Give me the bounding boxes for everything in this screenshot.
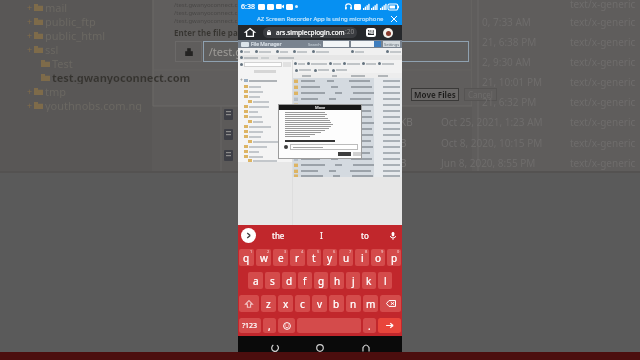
- staticText: u: [343, 251, 350, 265]
- staticText: Oct 25, 2021, 1:23 AM: [441, 115, 543, 129]
- button[interactable]: c: [295, 295, 310, 312]
- staticText: Search: [308, 42, 321, 47]
- button[interactable]: s: [265, 272, 280, 289]
- button[interactable]: [292, 102, 402, 108]
- staticText: text/x-generic: [570, 35, 636, 49]
- button[interactable]: [292, 84, 402, 90]
- button[interactable]: x: [278, 295, 293, 312]
- staticText: ars.simplecplogin.com: [276, 28, 345, 37]
- staticText: f: [303, 274, 307, 288]
- staticText: 2: [267, 249, 270, 254]
- button[interactable]: [292, 144, 402, 150]
- button[interactable]: Backspace: [380, 295, 401, 312]
- button[interactable]: [292, 90, 402, 96]
- button[interactable]: k: [362, 272, 376, 289]
- button[interactable]: [292, 168, 402, 174]
- staticText: +: [27, 29, 33, 41]
- button[interactable]: z: [261, 295, 276, 312]
- button[interactable]: g: [314, 272, 328, 289]
- staticText: +: [27, 43, 33, 55]
- button[interactable]: [292, 174, 402, 177]
- button[interactable]: to: [361, 230, 369, 241]
- button[interactable]: Enter: [378, 318, 401, 333]
- button[interactable]: q: [239, 249, 254, 266]
- button[interactable]: l: [378, 272, 392, 289]
- button[interactable]: Open tabs: [363, 25, 379, 40]
- staticText: :2083: [345, 27, 357, 38]
- button[interactable]: [292, 114, 402, 120]
- staticText: w: [260, 251, 268, 265]
- button[interactable]: Shift: [239, 295, 259, 312]
- button[interactable]: j: [346, 272, 360, 289]
- button[interactable]: a: [248, 272, 263, 289]
- button[interactable]: Settings: [383, 41, 400, 47]
- button[interactable]: Move Files: [414, 89, 456, 100]
- staticText: B: [400, 156, 407, 170]
- button[interactable]: ?123: [239, 318, 261, 333]
- button[interactable]: Home: [311, 339, 329, 357]
- button[interactable]: m: [363, 295, 378, 312]
- staticText: Move: [315, 105, 326, 110]
- button[interactable]: v: [312, 295, 327, 312]
- button[interactable]: Cancel: [468, 89, 493, 100]
- button[interactable]: ,: [263, 318, 276, 333]
- button[interactable]: [292, 132, 402, 138]
- button[interactable]: .: [363, 318, 376, 333]
- button[interactable]: i: [355, 249, 369, 266]
- staticText: File Manager: [251, 41, 282, 48]
- button[interactable]: p: [387, 249, 401, 266]
- button[interactable]: r: [290, 249, 305, 266]
- button[interactable]: Recent apps: [357, 339, 375, 357]
- button[interactable]: the: [272, 230, 285, 241]
- staticText: 7: [349, 249, 352, 254]
- button[interactable]: [292, 150, 402, 156]
- button[interactable]: y: [323, 249, 337, 266]
- button[interactable]: u: [339, 249, 353, 266]
- button[interactable]: Home directory: [175, 41, 202, 62]
- button[interactable]: d: [282, 272, 296, 289]
- button[interactable]: [292, 108, 402, 114]
- staticText: text/x-generic: [570, 136, 636, 150]
- button[interactable]: Back: [266, 339, 284, 357]
- button[interactable]: [292, 78, 402, 84]
- button[interactable]: w: [256, 249, 271, 266]
- button[interactable]: f: [298, 272, 312, 289]
- staticText: +: [240, 77, 243, 84]
- button[interactable]: I: [320, 230, 323, 241]
- button[interactable]: Search: [241, 228, 256, 243]
- staticText: +: [27, 15, 33, 27]
- staticText: 21, 6:38 PM: [482, 35, 537, 49]
- button[interactable]: Profile: [383, 28, 393, 38]
- button[interactable]: Emoji: [278, 318, 295, 333]
- button[interactable]: Home: [242, 25, 258, 40]
- button[interactable]: [292, 138, 402, 144]
- button[interactable]: Voice input: [386, 229, 399, 242]
- button[interactable]: b: [329, 295, 344, 312]
- button[interactable]: [292, 120, 402, 126]
- staticText: d: [286, 274, 293, 288]
- staticText: KB: [400, 115, 413, 129]
- staticText: text/x-generic: [570, 95, 636, 109]
- staticText: m: [366, 297, 376, 311]
- button[interactable]: t: [307, 249, 321, 266]
- staticText: c: [300, 297, 305, 311]
- button[interactable]: [292, 96, 402, 102]
- button[interactable]: e: [273, 249, 288, 266]
- button[interactable]: n: [346, 295, 361, 312]
- staticText: +: [27, 85, 33, 97]
- button[interactable]: [292, 126, 402, 132]
- button[interactable]: [292, 162, 402, 168]
- button[interactable]: ars.simplecplogin.com: [263, 27, 357, 38]
- button[interactable]: o: [371, 249, 385, 266]
- staticText: text/x-generic: [570, 55, 636, 69]
- staticText: public_ftp: [45, 14, 96, 28]
- staticText: Oct 8, 2020, 10:15 PM: [441, 136, 543, 150]
- staticText: e: [278, 251, 284, 265]
- button[interactable]: [292, 156, 402, 162]
- button[interactable]: Dismiss notification: [389, 14, 399, 24]
- staticText: tmp: [45, 84, 67, 98]
- staticText: .: [368, 319, 371, 333]
- button[interactable]: h: [330, 272, 344, 289]
